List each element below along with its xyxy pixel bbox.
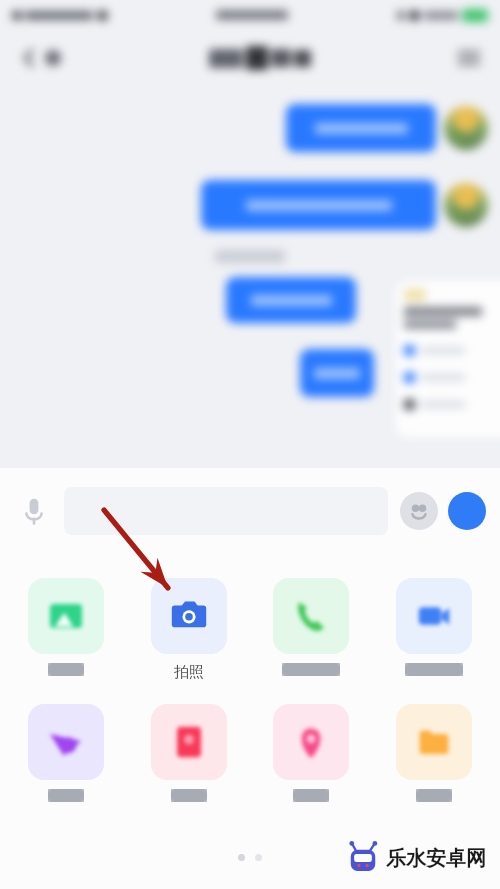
- button[interactable]: [255, 702, 367, 804]
- staticText: 乐水安卓网: [386, 846, 486, 871]
- button[interactable]: Emoji: [400, 492, 438, 530]
- button[interactable]: [133, 702, 245, 804]
- button[interactable]: Add attachment: [448, 492, 486, 530]
- button[interactable]: [10, 576, 122, 678]
- button[interactable]: [201, 180, 436, 230]
- button[interactable]: [286, 104, 436, 152]
- button[interactable]: [378, 702, 490, 804]
- button[interactable]: Voice message: [14, 491, 54, 531]
- button[interactable]: Avatar: [444, 183, 488, 227]
- button[interactable]: [255, 576, 367, 678]
- button[interactable]: [226, 277, 356, 323]
- button[interactable]: 拍照: [133, 576, 245, 684]
- button[interactable]: Menu: [456, 45, 482, 71]
- button[interactable]: [64, 487, 388, 535]
- button[interactable]: [396, 281, 500, 437]
- button[interactable]: [378, 576, 490, 678]
- button[interactable]: [18, 43, 65, 73]
- staticText: 拍照: [174, 663, 204, 682]
- button[interactable]: [300, 349, 374, 397]
- button[interactable]: [10, 702, 122, 804]
- button[interactable]: Avatar: [444, 106, 488, 150]
